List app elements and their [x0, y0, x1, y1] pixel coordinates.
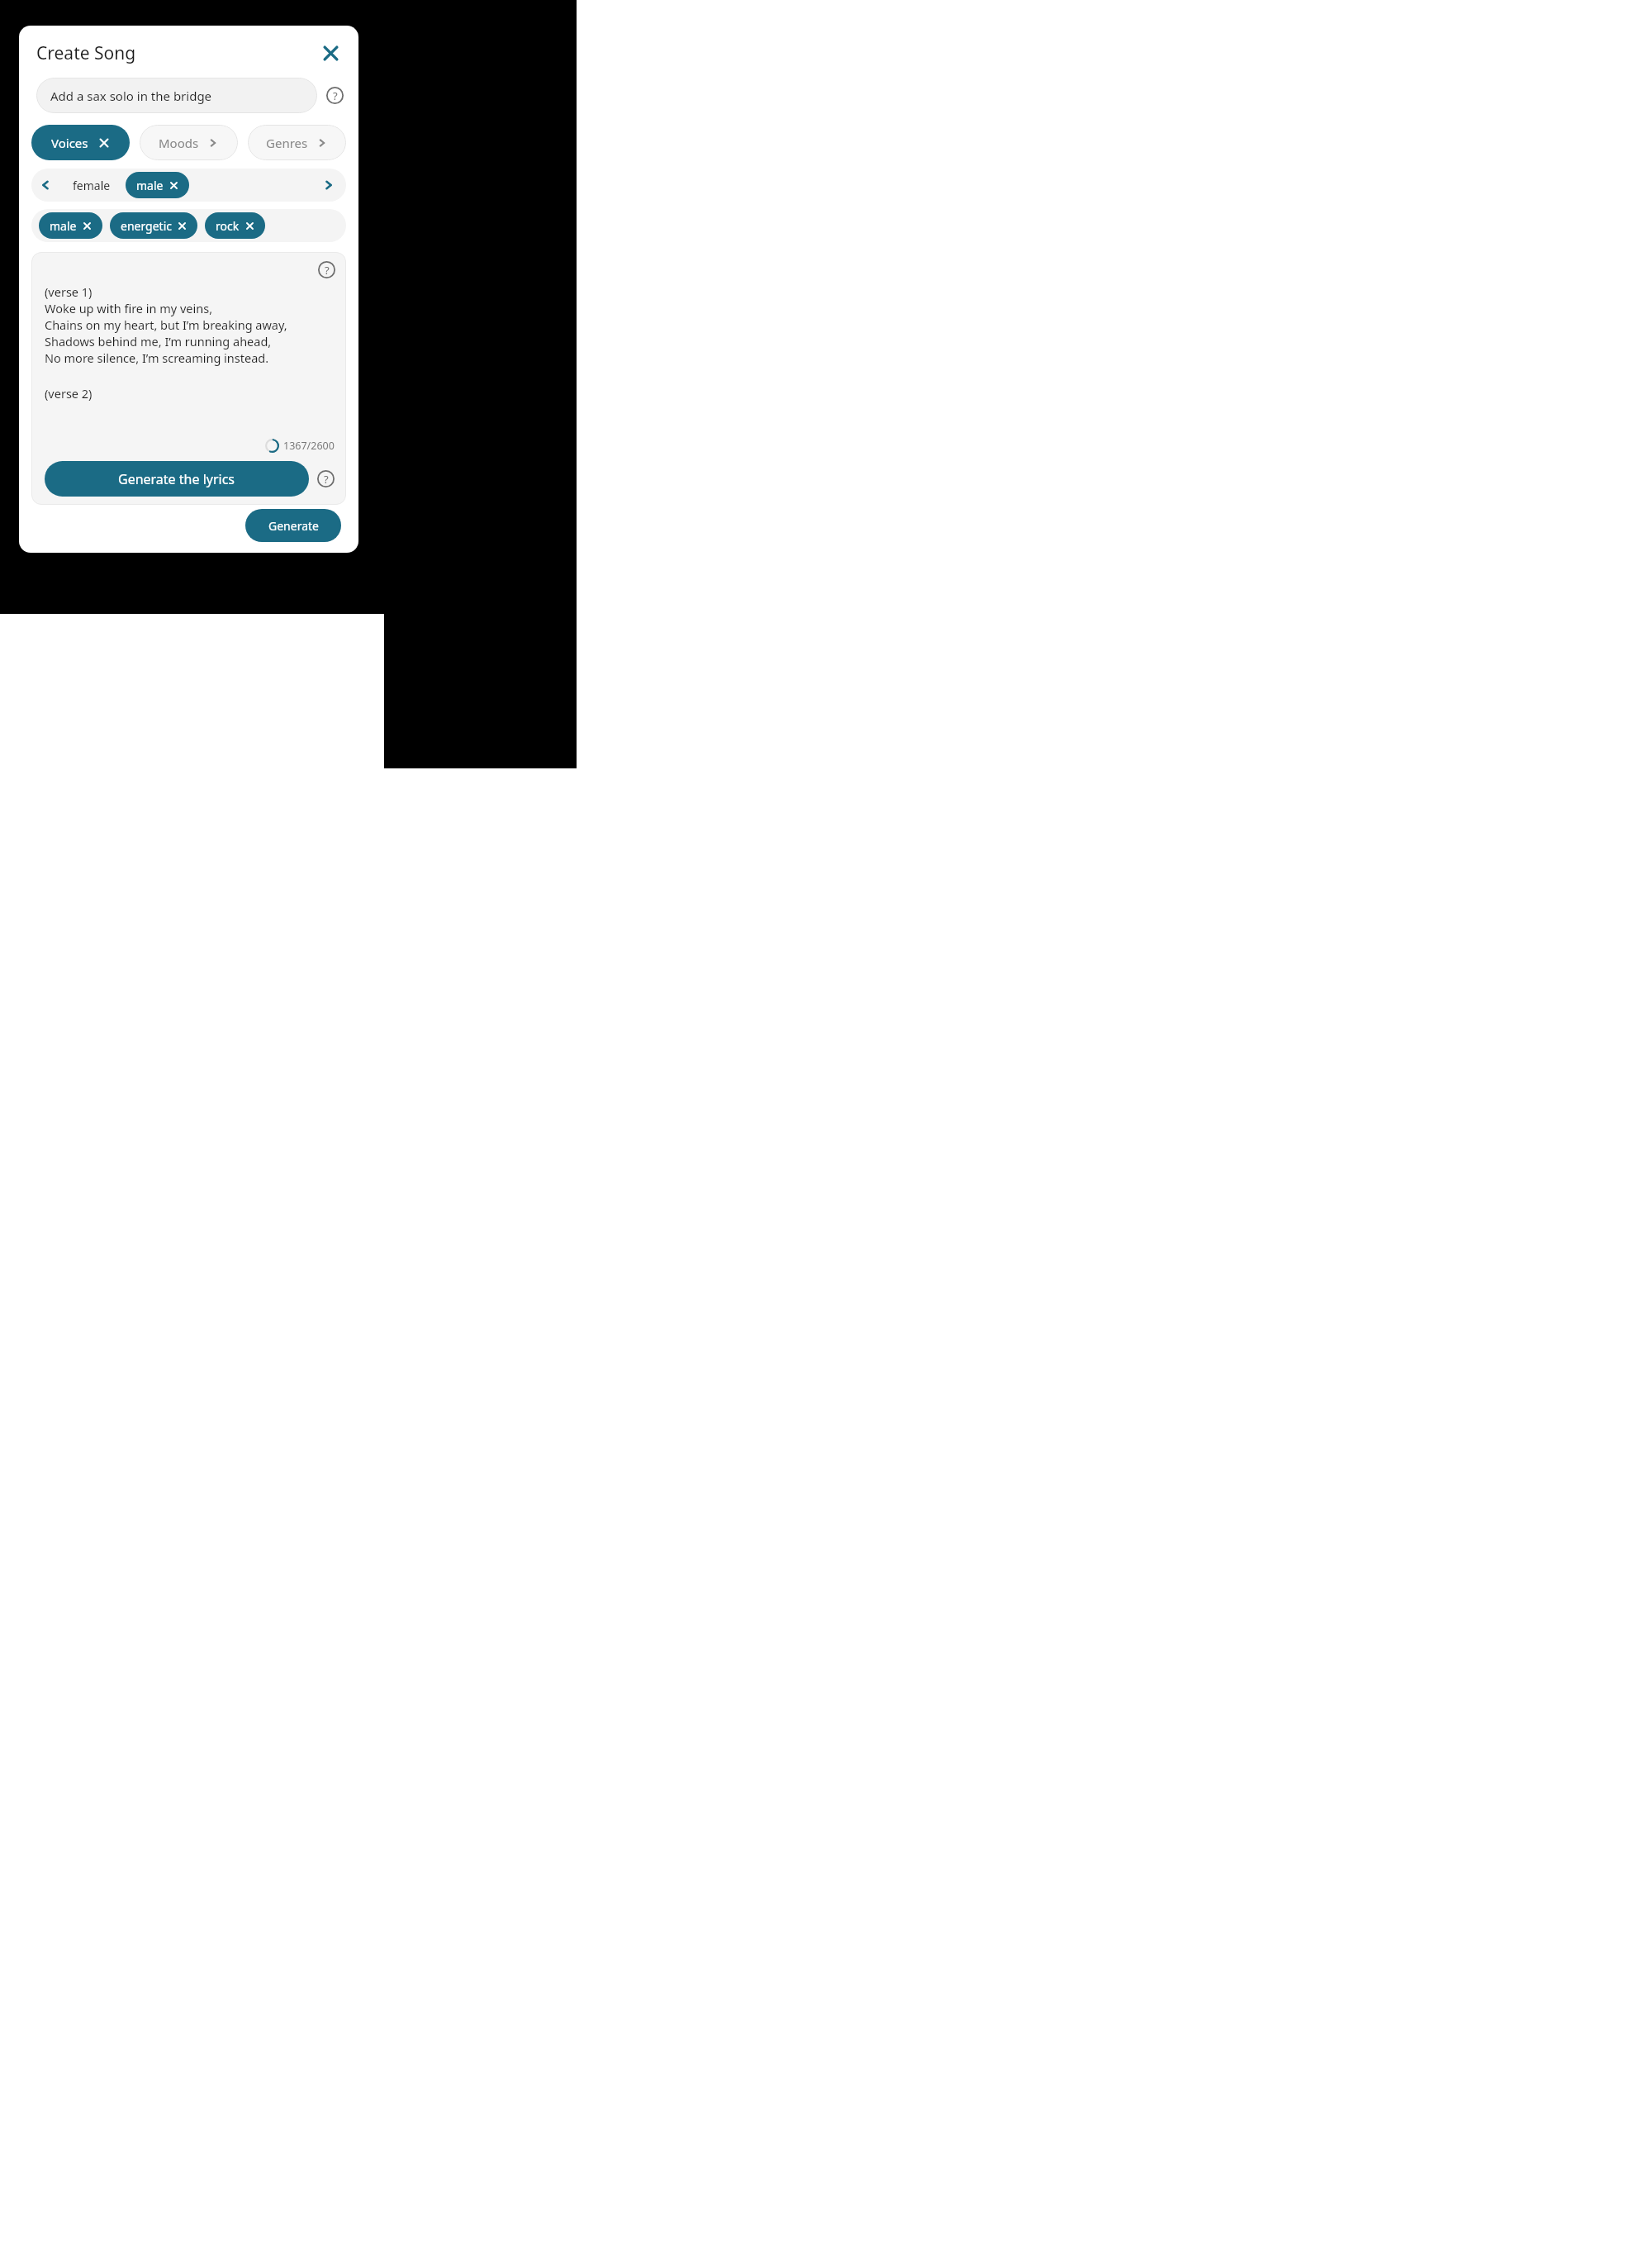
staticText: (verse 1) — [45, 283, 93, 300]
staticText: ? — [333, 88, 338, 103]
staticText: Chains on my heart, but I’m breaking awa… — [45, 316, 287, 333]
staticText: Shadows behind me, I’m running ahead, — [45, 333, 272, 349]
staticText: energetic — [121, 218, 172, 234]
button[interactable]: male — [39, 212, 102, 239]
button[interactable]: Generate — [245, 509, 341, 542]
staticText: rock — [216, 218, 240, 234]
button[interactable]: Help — [317, 470, 335, 487]
button[interactable]: energetic — [110, 212, 197, 239]
staticText: female — [73, 178, 111, 193]
button[interactable]: Voices — [31, 125, 130, 160]
staticText: Create Song — [36, 41, 136, 65]
button[interactable]: Genres — [248, 125, 346, 160]
button[interactable]: Close — [317, 40, 344, 66]
staticText: male — [50, 218, 77, 234]
staticText: male — [136, 178, 164, 193]
button[interactable]: Next — [315, 171, 343, 199]
staticText: ? — [325, 263, 330, 278]
staticText: Add a sax solo in the bridge — [50, 88, 212, 104]
staticText: Woke up with fire in my veins, — [45, 300, 213, 316]
staticText: Generate the lyrics — [118, 470, 235, 488]
button[interactable]: male — [126, 172, 189, 198]
staticText: (verse 2) — [45, 385, 93, 402]
staticText: Genres — [266, 135, 308, 151]
staticText: Voices — [51, 135, 88, 151]
staticText: No more silence, I’m screaming instead. — [45, 349, 269, 366]
button[interactable]: Help — [326, 87, 344, 104]
button[interactable]: female — [68, 174, 116, 197]
button[interactable]: Moods — [140, 125, 238, 160]
staticText: ? — [324, 472, 329, 487]
button[interactable]: Previous — [31, 171, 59, 199]
staticText: 1367/2600 — [283, 439, 335, 453]
button[interactable]: Help — [318, 261, 335, 278]
button[interactable]: Generate the lyrics — [45, 461, 309, 497]
button[interactable]: Add a sax solo in the bridge — [36, 78, 317, 113]
staticText: Moods — [159, 135, 199, 151]
button[interactable]: rock — [205, 212, 265, 239]
staticText: Generate — [268, 518, 319, 534]
